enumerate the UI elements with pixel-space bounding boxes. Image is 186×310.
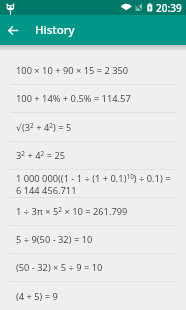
staticText: (4 + 5) = 9 bbox=[16, 290, 58, 303]
staticText: 5 ÷ 9(50 - 32) = 10 bbox=[16, 233, 93, 246]
button[interactable]: 1 ÷ 3π × 52 × 10 = 261.799 bbox=[0, 198, 186, 226]
staticText: 1 ÷ 3π × 52 × 10 = 261.799 bbox=[16, 205, 128, 218]
button[interactable]: Back bbox=[0, 15, 26, 45]
button[interactable]: 1 000 000((1 - 1 ÷ (1 + 0.1)10) ÷ 0.1) =… bbox=[0, 170, 186, 198]
button[interactable]: 32 + 42 = 25 bbox=[0, 142, 186, 170]
staticText: History bbox=[35, 22, 75, 38]
staticText: 1 000 000((1 - 1 ÷ (1 + 0.1)10) ÷ 0.1) =… bbox=[16, 172, 176, 196]
staticText: (50 - 32) × 5 ÷ 9 = 10 bbox=[16, 261, 103, 274]
button[interactable]: 5 ÷ 9(50 - 32) = 10 bbox=[0, 226, 186, 254]
staticText: 100 × 10 + 90 × 15 = 2 350 bbox=[16, 64, 129, 77]
button[interactable]: √(32 + 42) = 5 bbox=[0, 113, 186, 142]
button[interactable]: (50 - 32) × 5 ÷ 9 = 10 bbox=[0, 254, 186, 282]
staticText: 20:39 bbox=[156, 1, 182, 15]
button[interactable]: (4 + 5) = 9 bbox=[0, 282, 186, 310]
button[interactable]: 100 × 10 + 90 × 15 = 2 350 bbox=[0, 57, 186, 85]
button[interactable]: 100 + 14% + 0.5% = 114.57 bbox=[0, 85, 186, 113]
staticText: 32 + 42 = 25 bbox=[16, 149, 66, 162]
staticText: 100 + 14% + 0.5% = 114.57 bbox=[16, 92, 131, 105]
staticText: √(32 + 42) = 5 bbox=[16, 121, 72, 134]
